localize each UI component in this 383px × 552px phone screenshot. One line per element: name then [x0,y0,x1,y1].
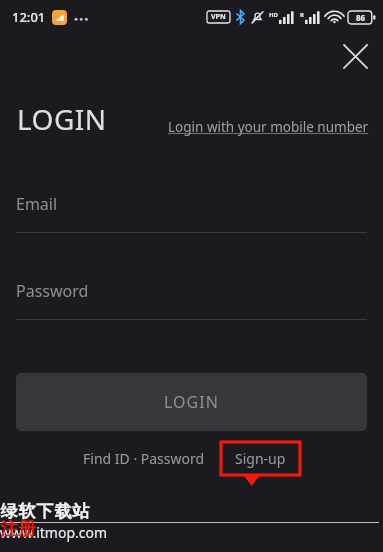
staticText: Sign-up [235,449,286,468]
staticText: R [300,11,304,19]
staticText: Login with your mobile number [168,118,369,136]
staticText: 12:01 [12,8,46,26]
button[interactable]: Close [335,36,375,76]
button[interactable]: Find ID · Password [83,443,205,474]
staticText: Find ID · Password [83,449,205,468]
staticText: Email [16,193,58,215]
staticText: 86 [356,12,366,23]
button[interactable]: Password [16,280,367,320]
button[interactable]: Email [16,193,367,233]
button[interactable]: Login with your mobile number [168,118,369,138]
staticText: LOGIN [17,100,107,138]
staticText: LOGIN [164,391,219,413]
staticText: HD [269,11,278,19]
staticText: 注册 [0,518,36,541]
button[interactable]: LOGIN [16,373,367,431]
staticText: 绿软下载站 [0,501,90,522]
staticText: VPN [211,12,226,22]
staticText: www.itmop.com [0,523,108,542]
staticText: Password [16,280,89,302]
button[interactable]: Sign-up [221,442,300,475]
